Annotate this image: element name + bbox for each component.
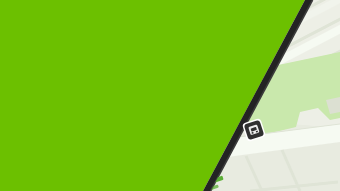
button[interactable]: [0, 0, 340, 191]
other: Map with transit panel: [0, 0, 340, 191]
